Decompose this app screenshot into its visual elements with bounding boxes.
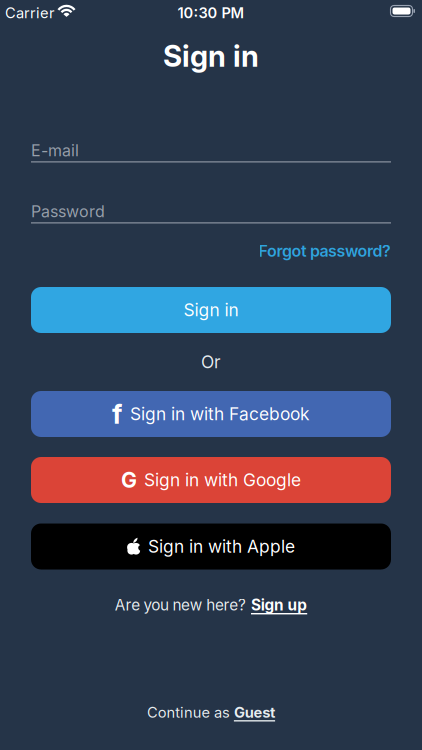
button[interactable]: Password xyxy=(31,194,391,226)
staticText: Carrier xyxy=(5,4,55,22)
staticText: Forgot password? xyxy=(258,242,391,260)
button[interactable]: Continue as xyxy=(147,704,275,721)
button[interactable]: Sign in xyxy=(31,287,391,333)
staticText: Guest xyxy=(234,704,275,721)
staticText: Continue as xyxy=(147,704,230,721)
staticText: Are you new here? xyxy=(115,596,246,614)
staticText: Sign in with Apple xyxy=(148,536,295,557)
button[interactable]: f xyxy=(31,391,391,437)
button[interactable]: Sign up xyxy=(251,596,307,614)
staticText: Sign in with Facebook xyxy=(130,404,310,424)
staticText: E-mail xyxy=(31,141,79,160)
staticText: 10:30 PM xyxy=(177,4,244,22)
staticText: Sign in with Google xyxy=(144,470,301,490)
button[interactable]: Sign in with Apple xyxy=(31,523,391,569)
staticText: Sign in xyxy=(183,300,238,320)
staticText: G xyxy=(121,467,137,493)
staticText: Password xyxy=(31,202,105,221)
button[interactable]: Forgot password? xyxy=(31,240,391,262)
staticText: Sign up xyxy=(251,596,307,614)
staticText: Or xyxy=(201,352,221,372)
staticText: f xyxy=(112,398,122,430)
button[interactable]: E-mail xyxy=(31,133,391,165)
button[interactable]: G xyxy=(31,457,391,503)
staticText: Sign in xyxy=(163,39,259,73)
